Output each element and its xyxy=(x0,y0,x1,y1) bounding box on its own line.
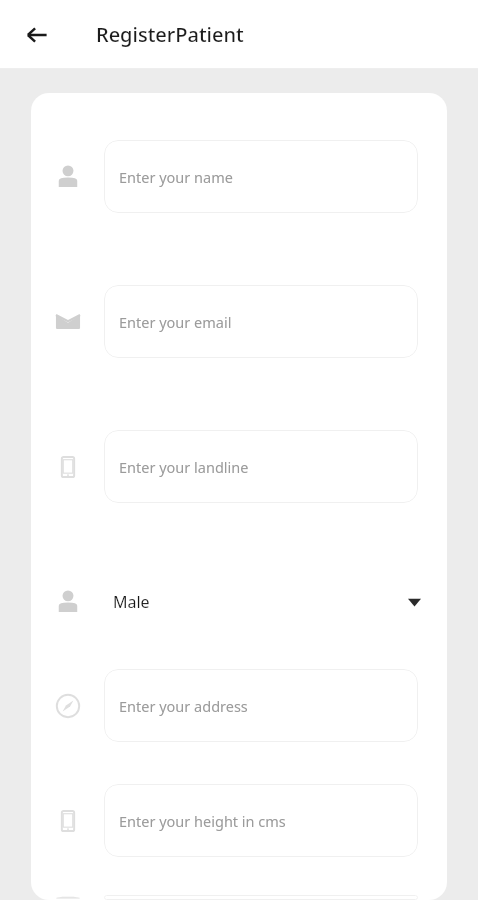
button[interactable]: Male xyxy=(31,571,447,633)
staticText: Enter your weight in kgs xyxy=(119,895,285,900)
staticText: RegisterPatient xyxy=(96,21,244,48)
staticText: Enter your height in cms xyxy=(119,811,286,831)
staticText: Enter your email xyxy=(119,312,232,332)
button[interactable]: Enter your landline xyxy=(104,430,418,503)
button[interactable]: Enter your weight in kgs xyxy=(104,895,418,900)
button[interactable]: Enter your address xyxy=(104,669,418,742)
staticText: Enter your name xyxy=(119,167,233,187)
button[interactable]: Enter your email xyxy=(104,285,418,358)
staticText: Enter your address xyxy=(119,696,248,716)
staticText: Male xyxy=(113,591,150,613)
button[interactable]: Back xyxy=(15,13,59,57)
staticText: Enter your landline xyxy=(119,457,249,477)
button[interactable]: Enter your height in cms xyxy=(104,784,418,857)
button[interactable]: Enter your name xyxy=(104,140,418,213)
